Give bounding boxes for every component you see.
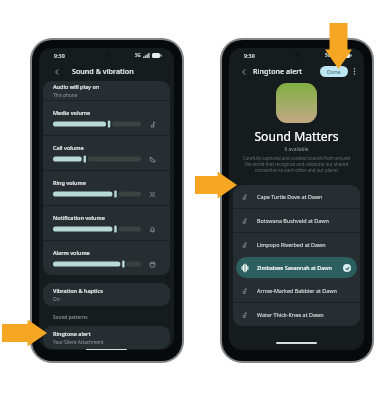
- staticText: Alarm volume: [53, 249, 90, 256]
- button[interactable]: Back: [237, 65, 250, 78]
- staticText: Your Silent Attachment: [53, 339, 104, 345]
- staticText: This phone: [53, 92, 78, 98]
- staticText: Sound patterns: [53, 314, 88, 320]
- staticText: Vibration & haptics: [53, 287, 103, 294]
- staticText: Botswana Bushveld at Dawn: [257, 217, 329, 224]
- button[interactable]: Arrow-Marked Babbler at Dawn: [233, 279, 360, 302]
- button[interactable]: Botswana Bushveld at Dawn: [233, 209, 360, 232]
- staticText: Ringtone alert: [53, 330, 91, 337]
- button[interactable]: Ring volume: [43, 171, 170, 205]
- button[interactable]: Call volume: [43, 136, 170, 170]
- button[interactable]: Audio will play on: [43, 81, 170, 100]
- staticText: Arrow-Marked Babbler at Dawn: [257, 287, 337, 294]
- staticText: Water Thick-Knee at Dawn: [257, 311, 324, 318]
- staticText: Sound Matters: [229, 128, 364, 145]
- staticText: Ringtone alert: [253, 66, 303, 76]
- staticText: 6 available: [229, 146, 364, 153]
- staticText: Notification volume: [53, 214, 105, 221]
- staticText: Limpopo Riverbed at Dawn: [257, 241, 326, 248]
- button[interactable]: Cape Turtle Dove at Dawn: [233, 185, 360, 208]
- staticText: Ring volume: [53, 179, 86, 186]
- staticText: 5G: [135, 52, 141, 58]
- button[interactable]: More options: [349, 66, 360, 77]
- staticText: Done: [327, 68, 341, 75]
- button[interactable]: Back: [50, 65, 63, 78]
- button[interactable]: Notification volume: [43, 206, 170, 240]
- button[interactable]: Limpopo Riverbed at Dawn: [233, 233, 360, 256]
- staticText: Zimbabwe Savannah at Dawn: [257, 264, 332, 271]
- staticText: Media volume: [53, 109, 91, 116]
- staticText: Carefully captured and curated sounds fr…: [241, 155, 352, 173]
- button[interactable]: Water Thick-Knee at Dawn: [233, 303, 360, 326]
- button[interactable]: Media volume: [43, 101, 170, 135]
- staticText: Sound & vibration: [72, 66, 134, 76]
- staticText: Cape Turtle Dove at Dawn: [257, 193, 323, 200]
- button[interactable]: Vibration & haptics: [43, 283, 170, 306]
- staticText: 5G: [325, 52, 331, 58]
- button[interactable]: Alarm volume: [43, 241, 170, 275]
- staticText: 9:30: [244, 52, 255, 59]
- button[interactable]: Done: [320, 66, 348, 77]
- button[interactable]: Ringtone alert: [43, 326, 170, 349]
- staticText: On: [53, 296, 60, 302]
- button[interactable]: Zimbabwe Savannah at Dawn: [236, 257, 357, 278]
- staticText: 9:30: [54, 52, 65, 59]
- staticText: Call volume: [53, 144, 84, 151]
- staticText: Audio will play on: [53, 83, 100, 90]
